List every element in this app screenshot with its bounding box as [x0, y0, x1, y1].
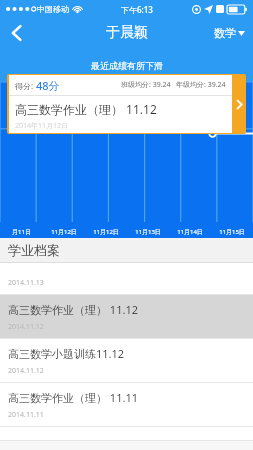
button[interactable]: Back [0, 18, 34, 48]
staticText: 11月14日 [169, 228, 211, 236]
button[interactable]: 2014.11.13 [0, 263, 253, 295]
staticText: 2014.11.11 [8, 410, 44, 420]
staticText: 最近成绩有所下滑 [91, 60, 163, 71]
staticText: 高三数学作业（理） 11.12 [15, 101, 157, 117]
staticText: 11月12日 [85, 228, 127, 236]
staticText: 高三数学作业（理） 11.11 [8, 390, 138, 405]
staticText: 于晨颖 [106, 24, 148, 42]
staticText: 下午6:13 [121, 4, 153, 15]
staticText: 中国移动 [37, 4, 69, 14]
staticText: 11月13日 [127, 228, 169, 236]
button[interactable]: 得分: [7, 74, 246, 134]
staticText: 学业档案 [8, 242, 60, 258]
staticText: 11月15日 [211, 228, 253, 236]
button[interactable]: 高三数学小题训练11.12 [0, 339, 253, 383]
staticText: 2014.11.13 [8, 278, 44, 288]
staticText: 2014.11.12 [8, 322, 44, 332]
button[interactable]: 高三数学作业（理） 11.11 [0, 383, 253, 427]
staticText: 高三数学作业（理） 11.12 [8, 302, 138, 317]
staticText: 得分: [15, 80, 34, 91]
staticText: 数学 [214, 26, 236, 40]
staticText: 年级均分: 39.24 [176, 80, 226, 90]
staticText: 2014.11.12 [8, 366, 44, 376]
button[interactable]: 高三数学作业（理） 11.12 [0, 295, 253, 339]
button[interactable] [0, 427, 253, 441]
staticText: 月11日 [0, 228, 43, 236]
staticText: 48分 [36, 78, 60, 93]
staticText: 11月12日 [43, 228, 85, 236]
staticText: 班级均分: 39.24 [121, 80, 171, 90]
staticText: 2014年11月12日 [15, 121, 69, 131]
button[interactable]: 数学 [214, 18, 245, 48]
staticText: 高三数学小题训练11.12 [8, 346, 125, 361]
